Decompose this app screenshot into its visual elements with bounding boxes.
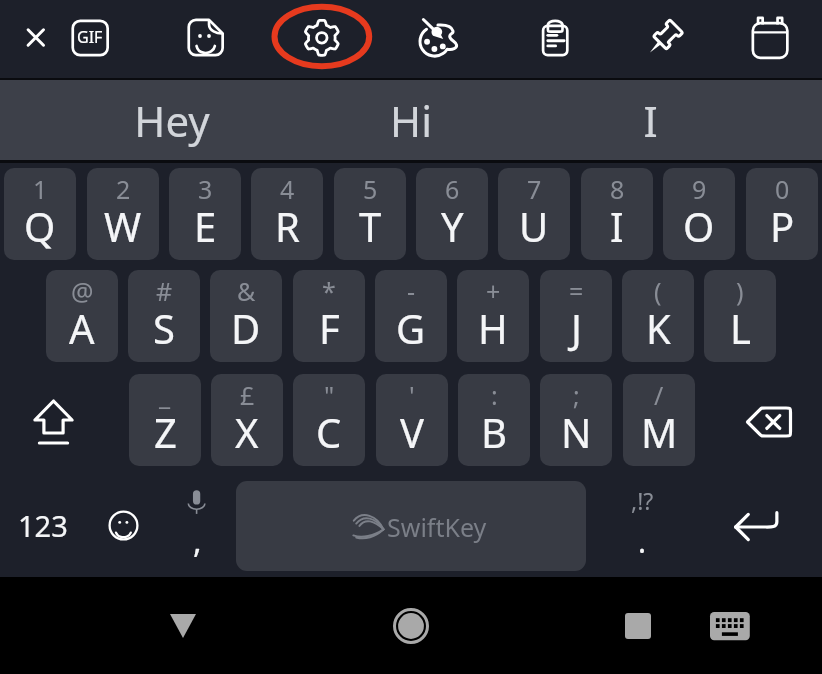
button[interactable]: ': [376, 374, 448, 466]
staticText: =: [569, 274, 584, 308]
staticText: (: [654, 274, 662, 308]
staticText: 3: [198, 172, 213, 206]
staticText: X: [235, 405, 259, 459]
button[interactable]: Hi: [343, 80, 479, 160]
button[interactable]: #: [128, 270, 200, 362]
staticText: E: [194, 199, 217, 253]
staticText: R: [275, 199, 300, 253]
staticText: D: [231, 301, 261, 355]
button[interactable]: *: [293, 270, 365, 362]
button[interactable]: Enter: [700, 481, 818, 571]
staticText: SwiftKey: [387, 510, 487, 544]
button[interactable]: ,!?: [600, 481, 684, 571]
staticText: J: [571, 301, 582, 355]
button[interactable]: -: [375, 270, 447, 362]
staticText: *: [322, 274, 336, 308]
button[interactable]: Clipboard: [529, 6, 581, 70]
staticText: /: [654, 378, 664, 412]
button[interactable]: Pin: [639, 6, 691, 70]
button[interactable]: SwiftKey: [236, 481, 586, 571]
staticText: 1: [33, 172, 48, 206]
staticText: P: [770, 199, 795, 253]
staticText: I: [643, 92, 658, 149]
staticText: £: [240, 378, 255, 412]
staticText: L: [730, 301, 751, 355]
staticText: N: [561, 405, 592, 459]
staticText: ;: [573, 378, 580, 412]
staticText: &: [237, 274, 256, 308]
button[interactable]: /: [623, 374, 695, 466]
button[interactable]: Calendar: [744, 6, 796, 70]
button[interactable]: Backspace: [700, 374, 818, 466]
button[interactable]: Shift: [4, 374, 124, 466]
button[interactable]: &: [210, 270, 282, 362]
staticText: Hey: [134, 92, 210, 149]
button[interactable]: Settings: [286, 0, 359, 74]
button[interactable]: £: [211, 374, 283, 466]
staticText: _: [159, 378, 171, 412]
staticText: H: [478, 301, 508, 355]
button[interactable]: _: [129, 374, 201, 466]
staticText: T: [359, 199, 382, 253]
button[interactable]: 0: [746, 168, 818, 260]
button[interactable]: Themes: [406, 6, 466, 70]
staticText: K: [646, 301, 671, 355]
staticText: W: [104, 199, 142, 253]
staticText: A: [69, 301, 95, 355]
staticText: Z: [154, 405, 177, 459]
button[interactable]: 7: [498, 168, 570, 260]
button[interactable]: =: [540, 270, 612, 362]
button[interactable]: (: [622, 270, 694, 362]
staticText: 2: [116, 172, 131, 206]
button[interactable]: Emoji: [91, 481, 156, 571]
button[interactable]: Switch keyboard: [690, 577, 770, 674]
button[interactable]: 9: [663, 168, 735, 260]
staticText: Q: [24, 199, 56, 253]
button[interactable]: +: [457, 270, 529, 362]
button[interactable]: 3: [169, 168, 241, 260]
staticText: :: [491, 378, 498, 412]
button[interactable]: Back: [143, 577, 223, 674]
button[interactable]: :: [458, 374, 530, 466]
staticText: 5: [363, 172, 378, 206]
staticText: I: [610, 199, 624, 253]
staticText: Hi: [390, 92, 432, 149]
button[interactable]: GIF: [64, 6, 116, 70]
staticText: 0: [775, 172, 790, 206]
staticText: +: [486, 274, 501, 308]
staticText: @: [71, 274, 94, 308]
staticText: 4: [280, 172, 295, 206]
button[interactable]: Voice typing: [164, 481, 229, 571]
button[interactable]: 6: [416, 168, 488, 260]
staticText: GIF: [77, 26, 103, 48]
staticText: G: [396, 301, 426, 355]
button[interactable]: 123: [2, 481, 84, 571]
staticText: B: [481, 405, 507, 459]
staticText: O: [683, 199, 715, 253]
button[interactable]: ": [293, 374, 365, 466]
staticText: Y: [441, 199, 464, 253]
staticText: #: [156, 274, 173, 308]
staticText: 8: [610, 172, 625, 206]
button[interactable]: 2: [87, 168, 159, 260]
button[interactable]: Hey: [0, 80, 343, 160]
button[interactable]: Home: [371, 577, 451, 674]
button[interactable]: 1: [4, 168, 76, 260]
button[interactable]: I: [479, 80, 822, 160]
button[interactable]: Recent apps: [598, 577, 678, 674]
button[interactable]: 8: [581, 168, 653, 260]
staticText: ,: [193, 519, 202, 563]
staticText: 7: [527, 172, 542, 206]
button[interactable]: @: [46, 270, 118, 362]
button[interactable]: 4: [251, 168, 323, 260]
button[interactable]: 5: [334, 168, 406, 260]
button[interactable]: Close: [10, 6, 62, 70]
button[interactable]: ): [704, 270, 776, 362]
staticText: ): [736, 274, 744, 308]
staticText: ': [409, 378, 415, 412]
button[interactable]: Stickers: [179, 6, 232, 70]
staticText: C: [316, 405, 342, 459]
staticText: M: [641, 405, 678, 459]
staticText: 6: [445, 172, 460, 206]
button[interactable]: ;: [540, 374, 612, 466]
